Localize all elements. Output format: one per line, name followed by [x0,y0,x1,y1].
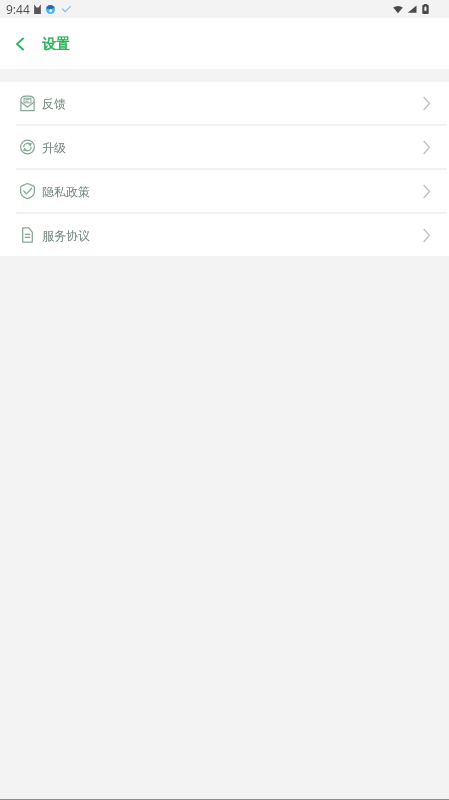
staticText: 服务协议 [42,228,90,243]
button[interactable]: 升级 [0,126,449,168]
staticText: 9:44 [6,1,30,17]
staticText: 反馈 [42,96,66,111]
button[interactable]: Back [0,24,40,64]
staticText: 升级 [42,140,66,155]
button[interactable]: 隐私政策 [0,170,449,212]
button[interactable]: 服务协议 [0,214,449,256]
button[interactable]: 反馈 [0,82,449,124]
staticText: 设置 [42,36,70,54]
staticText: 隐私政策 [42,184,90,199]
